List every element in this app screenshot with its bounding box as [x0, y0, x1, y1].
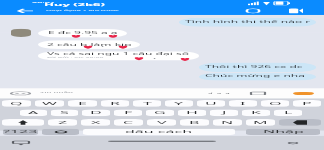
button[interactable]: Vs cả sai ngu 1 câu đại số: [38, 51, 199, 60]
staticText: C: [123, 120, 134, 125]
button[interactable]: X: [81, 119, 110, 126]
staticText: P: [302, 101, 312, 106]
button[interactable]: H: [178, 109, 206, 116]
staticText: Tin nhắn: [40, 91, 73, 94]
staticText: ?123: [3, 130, 38, 134]
button[interactable]: E: [68, 100, 97, 107]
staticText: D: [90, 110, 102, 115]
button[interactable]: Q: [2, 100, 31, 107]
staticText: O: [269, 101, 282, 106]
staticText: Hoạt động 1 giờ trước: [46, 10, 119, 12]
button[interactable]: Hide keyboard: [12, 141, 30, 145]
button[interactable]: ?123: [3, 129, 38, 135]
button[interactable]: V: [147, 119, 176, 126]
button[interactable]: A: [20, 109, 47, 116]
staticText: E: [78, 101, 87, 106]
button[interactable]: R: [101, 100, 129, 107]
button[interactable]: G: [146, 109, 174, 116]
staticText: 1: [152, 56, 158, 59]
button[interactable]: Y: [165, 100, 193, 107]
staticText: dấu cách: [125, 130, 193, 134]
staticText: V: [157, 120, 167, 125]
button[interactable]: S: [51, 109, 78, 116]
staticText: Thôi thì 926 cx dc: [205, 65, 303, 68]
button[interactable]: dấu cách: [83, 129, 235, 135]
staticText: N: [221, 120, 234, 125]
button[interactable]: U: [197, 100, 225, 107]
button[interactable]: E đc 9.95 a ạ: [38, 29, 127, 38]
button[interactable]: B: [180, 119, 209, 126]
staticText: H: [186, 110, 198, 115]
button[interactable]: I: [229, 100, 257, 107]
button[interactable]: Backspace: [279, 119, 321, 126]
button[interactable]: M: [246, 119, 275, 126]
staticText: Tình hình thi thế nào r: [185, 20, 311, 23]
staticText: Đã gửi · lúc 20:00: [47, 57, 104, 59]
button[interactable]: Keyboard settings: [286, 141, 300, 145]
staticText: K: [251, 110, 261, 115]
button[interactable]: Nhập: [246, 129, 320, 135]
staticText: F: [124, 110, 133, 115]
staticText: 1: [88, 34, 94, 37]
button[interactable]: Chúc mừng e nha: [199, 73, 316, 81]
staticText: A: [28, 110, 39, 115]
staticText: 1: [100, 45, 106, 47]
staticText: X: [91, 120, 101, 125]
button[interactable]: T: [133, 100, 161, 107]
button[interactable]: L: [274, 109, 302, 116]
button[interactable]: Z: [48, 119, 77, 126]
button[interactable]: P: [293, 100, 321, 107]
button[interactable]: 2 câu b làm kịp: [38, 40, 140, 49]
button[interactable]: Sticker: [10, 91, 31, 95]
staticText: M: [253, 120, 268, 125]
button[interactable]: N: [213, 119, 242, 126]
staticText: Chúc mừng e nha: [205, 75, 305, 78]
staticText: Y: [174, 101, 184, 106]
button[interactable]: Tình hình thi thế nào r: [179, 18, 316, 27]
staticText: 2 câu b làm kịp: [47, 43, 132, 46]
staticText: T: [143, 101, 152, 106]
staticText: B: [189, 120, 200, 125]
button[interactable]: Thôi thì 926 cx dc: [199, 63, 316, 72]
staticText: ấ á à: [208, 92, 230, 94]
staticText: I: [240, 101, 246, 106]
staticText: L: [284, 110, 293, 115]
button[interactable]: W: [35, 100, 64, 107]
button[interactable]: O: [261, 100, 289, 107]
button[interactable]: C: [114, 119, 143, 126]
staticText: J: [222, 110, 227, 115]
staticText: Huy (2k6): [44, 3, 105, 7]
button[interactable]: J: [210, 109, 238, 116]
staticText: Vs cả sai ngu 1 câu đại số: [47, 53, 189, 56]
staticText: G: [154, 110, 166, 115]
button[interactable]: Keyboard options: [250, 92, 266, 95]
staticText: S: [60, 110, 69, 115]
staticText: E đc 9.95 a ạ: [48, 32, 118, 35]
staticText: R: [110, 101, 120, 106]
button[interactable]: Video call: [289, 8, 303, 13]
button[interactable]: Send: [293, 92, 314, 95]
button[interactable]: Emoji: [42, 129, 79, 135]
staticText: Q: [10, 101, 23, 106]
button[interactable]: F: [114, 109, 142, 116]
staticText: U: [205, 101, 217, 106]
button[interactable]: Shift: [2, 119, 44, 126]
button[interactable]: K: [242, 109, 270, 116]
button[interactable]: Back: [17, 8, 33, 14]
staticText: Nhập: [263, 130, 304, 134]
staticText: 20:01: [32, 1, 56, 3]
staticText: Z: [58, 120, 68, 125]
staticText: W: [42, 101, 57, 106]
button[interactable]: D: [82, 109, 110, 116]
button[interactable]: Call: [246, 8, 260, 13]
